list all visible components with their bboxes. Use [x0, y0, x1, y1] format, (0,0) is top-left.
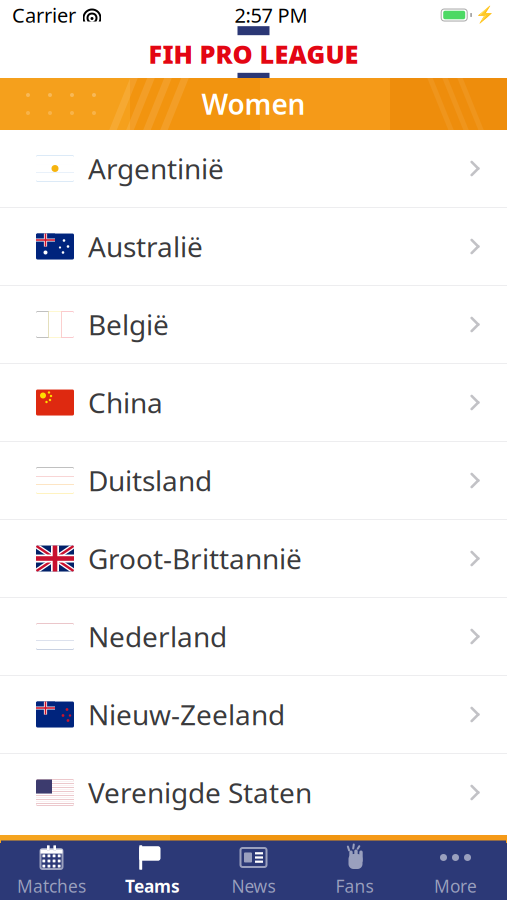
staticText: Nieuw-Zeeland: [88, 696, 285, 733]
button[interactable]: Teams: [102, 840, 203, 900]
staticText: China: [88, 384, 163, 421]
button[interactable]: Nieuw-Zeeland: [0, 676, 507, 754]
staticText: Carrier: [12, 2, 76, 28]
staticText: Women: [201, 85, 305, 123]
button[interactable]: News: [203, 840, 304, 900]
staticText: Matches: [17, 874, 86, 897]
staticText: Nederland: [88, 618, 227, 655]
staticText: Argentinië: [88, 150, 224, 187]
staticText: Teams: [125, 874, 180, 897]
button[interactable]: Matches: [1, 840, 102, 900]
staticText: FIH PRO LEAGUE: [148, 37, 358, 71]
button[interactable]: China: [0, 364, 507, 442]
button[interactable]: Verenigde Staten: [0, 754, 507, 831]
staticText: België: [88, 306, 169, 343]
button[interactable]: Fans: [304, 840, 405, 900]
staticText: Verenigde Staten: [88, 774, 312, 811]
staticText: ⚡: [475, 6, 495, 24]
button[interactable]: Nederland: [0, 598, 507, 676]
staticText: More: [434, 874, 477, 897]
staticText: News: [231, 874, 275, 897]
button[interactable]: Groot-Brittannië: [0, 520, 507, 598]
button[interactable]: Australië: [0, 208, 507, 286]
staticText: Groot-Brittannië: [88, 540, 302, 577]
button[interactable]: More: [405, 840, 506, 900]
staticText: Duitsland: [88, 462, 212, 499]
staticText: 2:57 PM: [235, 2, 308, 28]
staticText: Australië: [88, 228, 203, 265]
button[interactable]: Argentinië: [0, 130, 507, 208]
staticText: Fans: [335, 874, 373, 897]
button[interactable]: Duitsland: [0, 442, 507, 520]
button[interactable]: België: [0, 286, 507, 364]
